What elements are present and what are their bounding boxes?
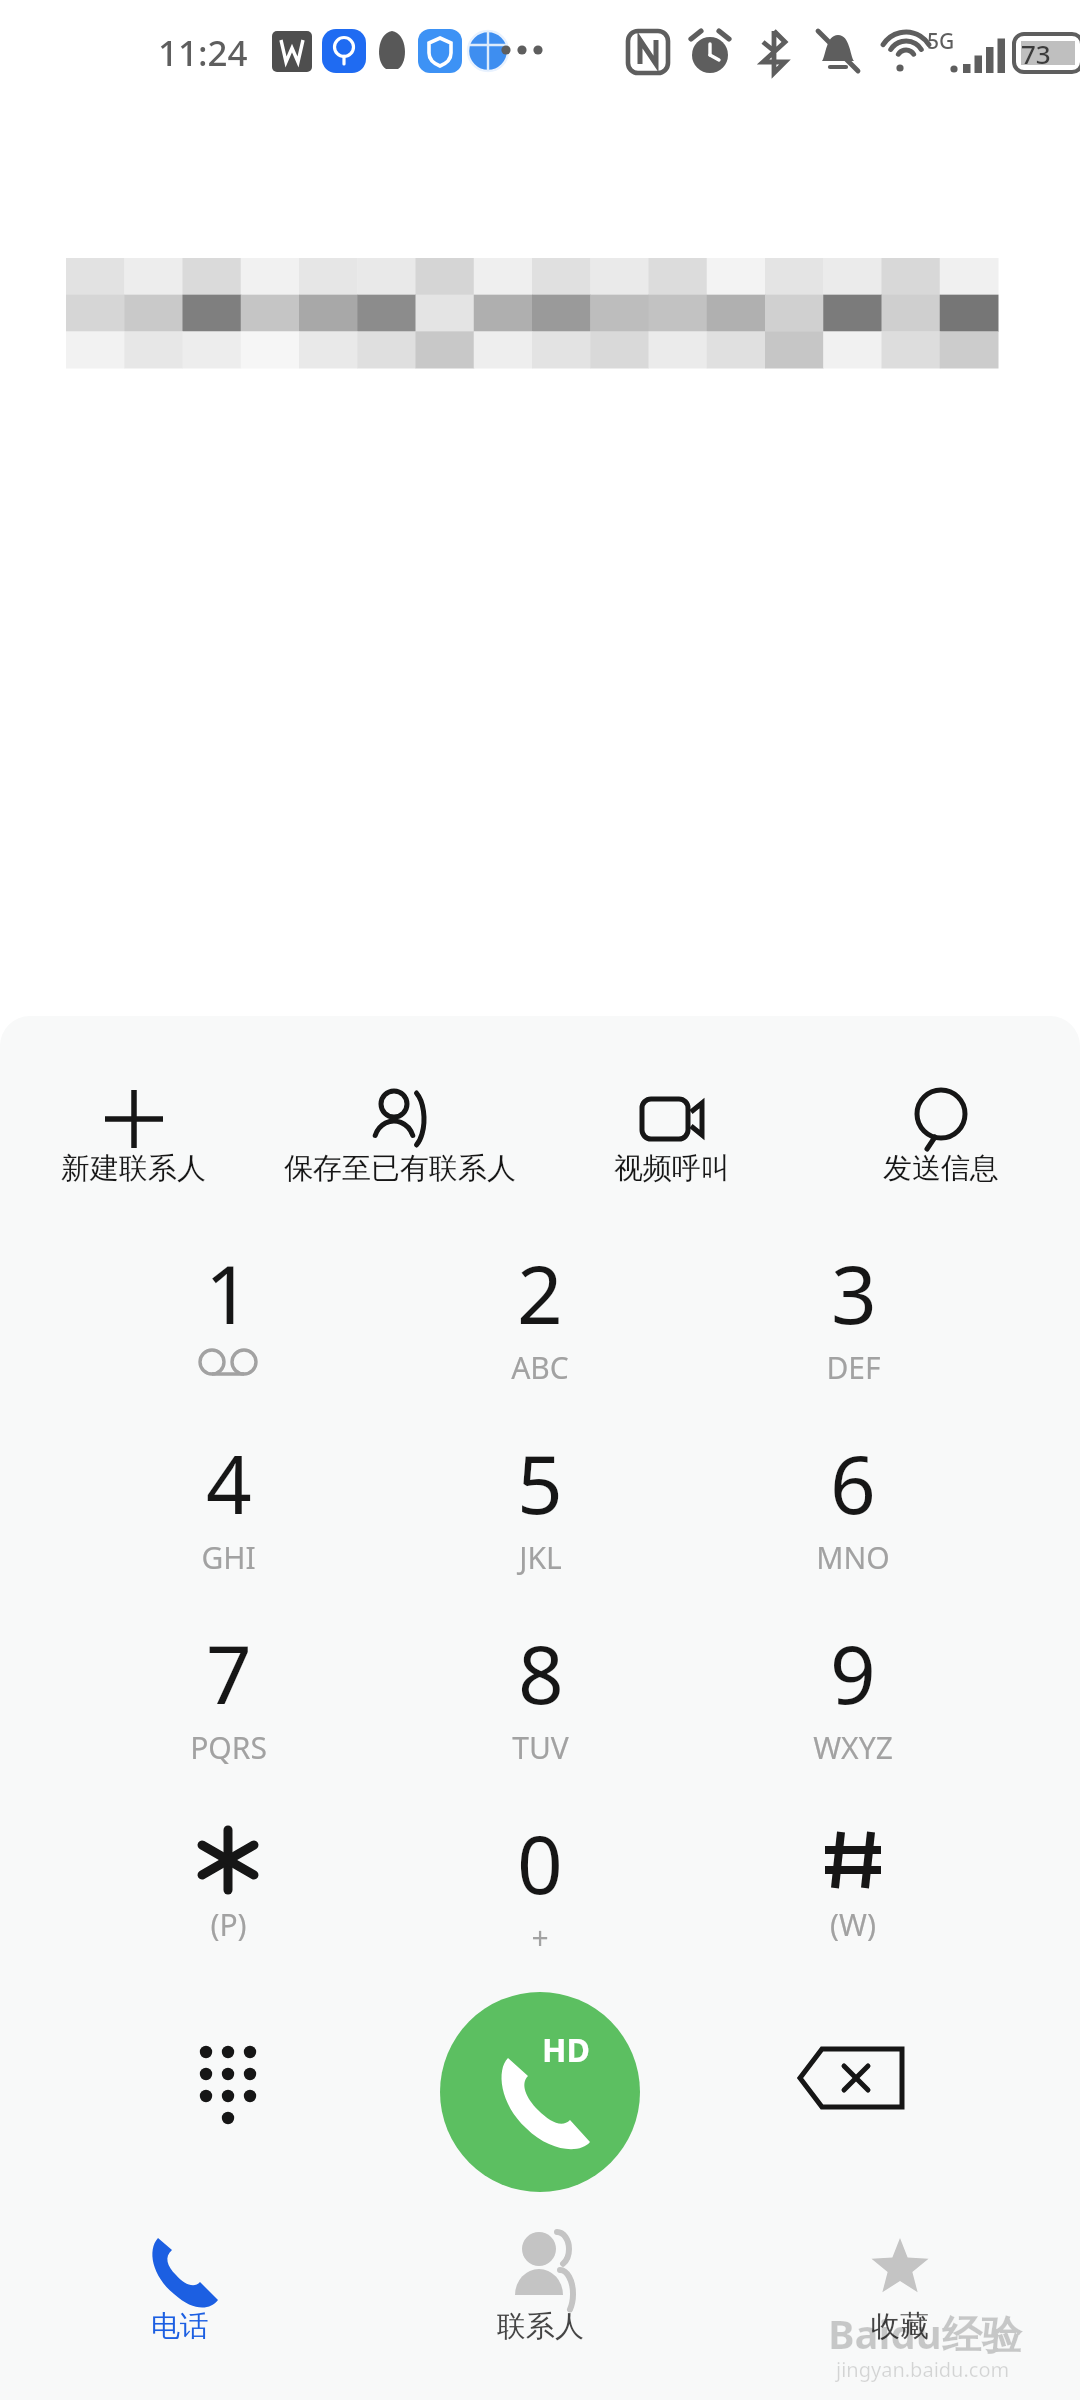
button[interactable]: 保存至已有联系人 <box>270 1088 530 1218</box>
button[interactable]: 发送信息 <box>811 1088 1071 1218</box>
button[interactable]: 视频呼叫 <box>542 1088 802 1218</box>
button[interactable]: Call <box>440 1992 640 2192</box>
staticText: 电话 <box>151 2308 209 2345</box>
staticText: 7 <box>206 1618 252 1727</box>
button[interactable]: 电话 <box>0 2228 360 2400</box>
button[interactable]: 新建联系人 <box>3 1088 263 1218</box>
staticText: (W) <box>830 1904 876 1945</box>
staticText: 视频呼叫 <box>614 1150 730 1187</box>
button[interactable]: (W) <box>713 1808 993 1986</box>
staticText: 73 <box>1021 36 1051 71</box>
button[interactable]: 9 <box>713 1618 993 1796</box>
staticText: + <box>531 1917 549 1958</box>
button[interactable]: 6 <box>713 1428 993 1606</box>
staticText: 2 <box>517 1238 563 1347</box>
staticText: 5G <box>927 27 955 56</box>
staticText: TUV <box>512 1727 569 1768</box>
button[interactable]: 8 <box>400 1618 680 1796</box>
button[interactable]: 2 <box>400 1238 680 1416</box>
staticText: 5 <box>517 1428 563 1537</box>
staticText: 0 <box>517 1808 563 1917</box>
staticText: 8 <box>518 1618 564 1727</box>
button[interactable]: 3 <box>713 1238 993 1416</box>
staticText: (P) <box>210 1904 247 1945</box>
staticText: Baidu经验 <box>828 2306 1022 2361</box>
button[interactable]: 收藏 <box>720 2228 1080 2400</box>
staticText: 收藏 <box>871 2308 929 2345</box>
staticText: 4 <box>206 1428 252 1537</box>
button[interactable]: Keypad <box>88 1998 368 2158</box>
staticText: 1 <box>205 1238 251 1347</box>
button[interactable]: 7 <box>88 1618 368 1796</box>
staticText: 联系人 <box>497 2308 584 2345</box>
staticText: PQRS <box>190 1727 267 1768</box>
staticText: 新建联系人 <box>61 1150 206 1187</box>
staticText: JKL <box>519 1537 562 1578</box>
button[interactable]: (P) <box>88 1808 368 1986</box>
staticText: GHI <box>201 1537 256 1578</box>
button[interactable]: 5 <box>400 1428 680 1606</box>
staticText: 3 <box>831 1238 877 1347</box>
staticText: WXYZ <box>813 1727 893 1768</box>
staticText: 6 <box>830 1428 876 1537</box>
staticText: jingyan.baidu.com <box>836 2356 1010 2383</box>
staticText: 保存至已有联系人 <box>284 1150 516 1187</box>
button[interactable]: 4 <box>88 1428 368 1606</box>
staticText: MNO <box>816 1537 890 1578</box>
button[interactable]: Delete <box>712 1998 992 2158</box>
button[interactable]: 1 <box>88 1238 368 1416</box>
staticText: 9 <box>830 1618 876 1727</box>
button[interactable]: 联系人 <box>360 2228 720 2400</box>
staticText: ABC <box>511 1347 569 1388</box>
staticText: 发送信息 <box>883 1150 999 1187</box>
staticText: HD <box>542 2028 590 2072</box>
button[interactable]: 0 <box>400 1808 680 1986</box>
staticText: DEF <box>826 1347 881 1388</box>
staticText: 11:24 <box>158 29 248 77</box>
